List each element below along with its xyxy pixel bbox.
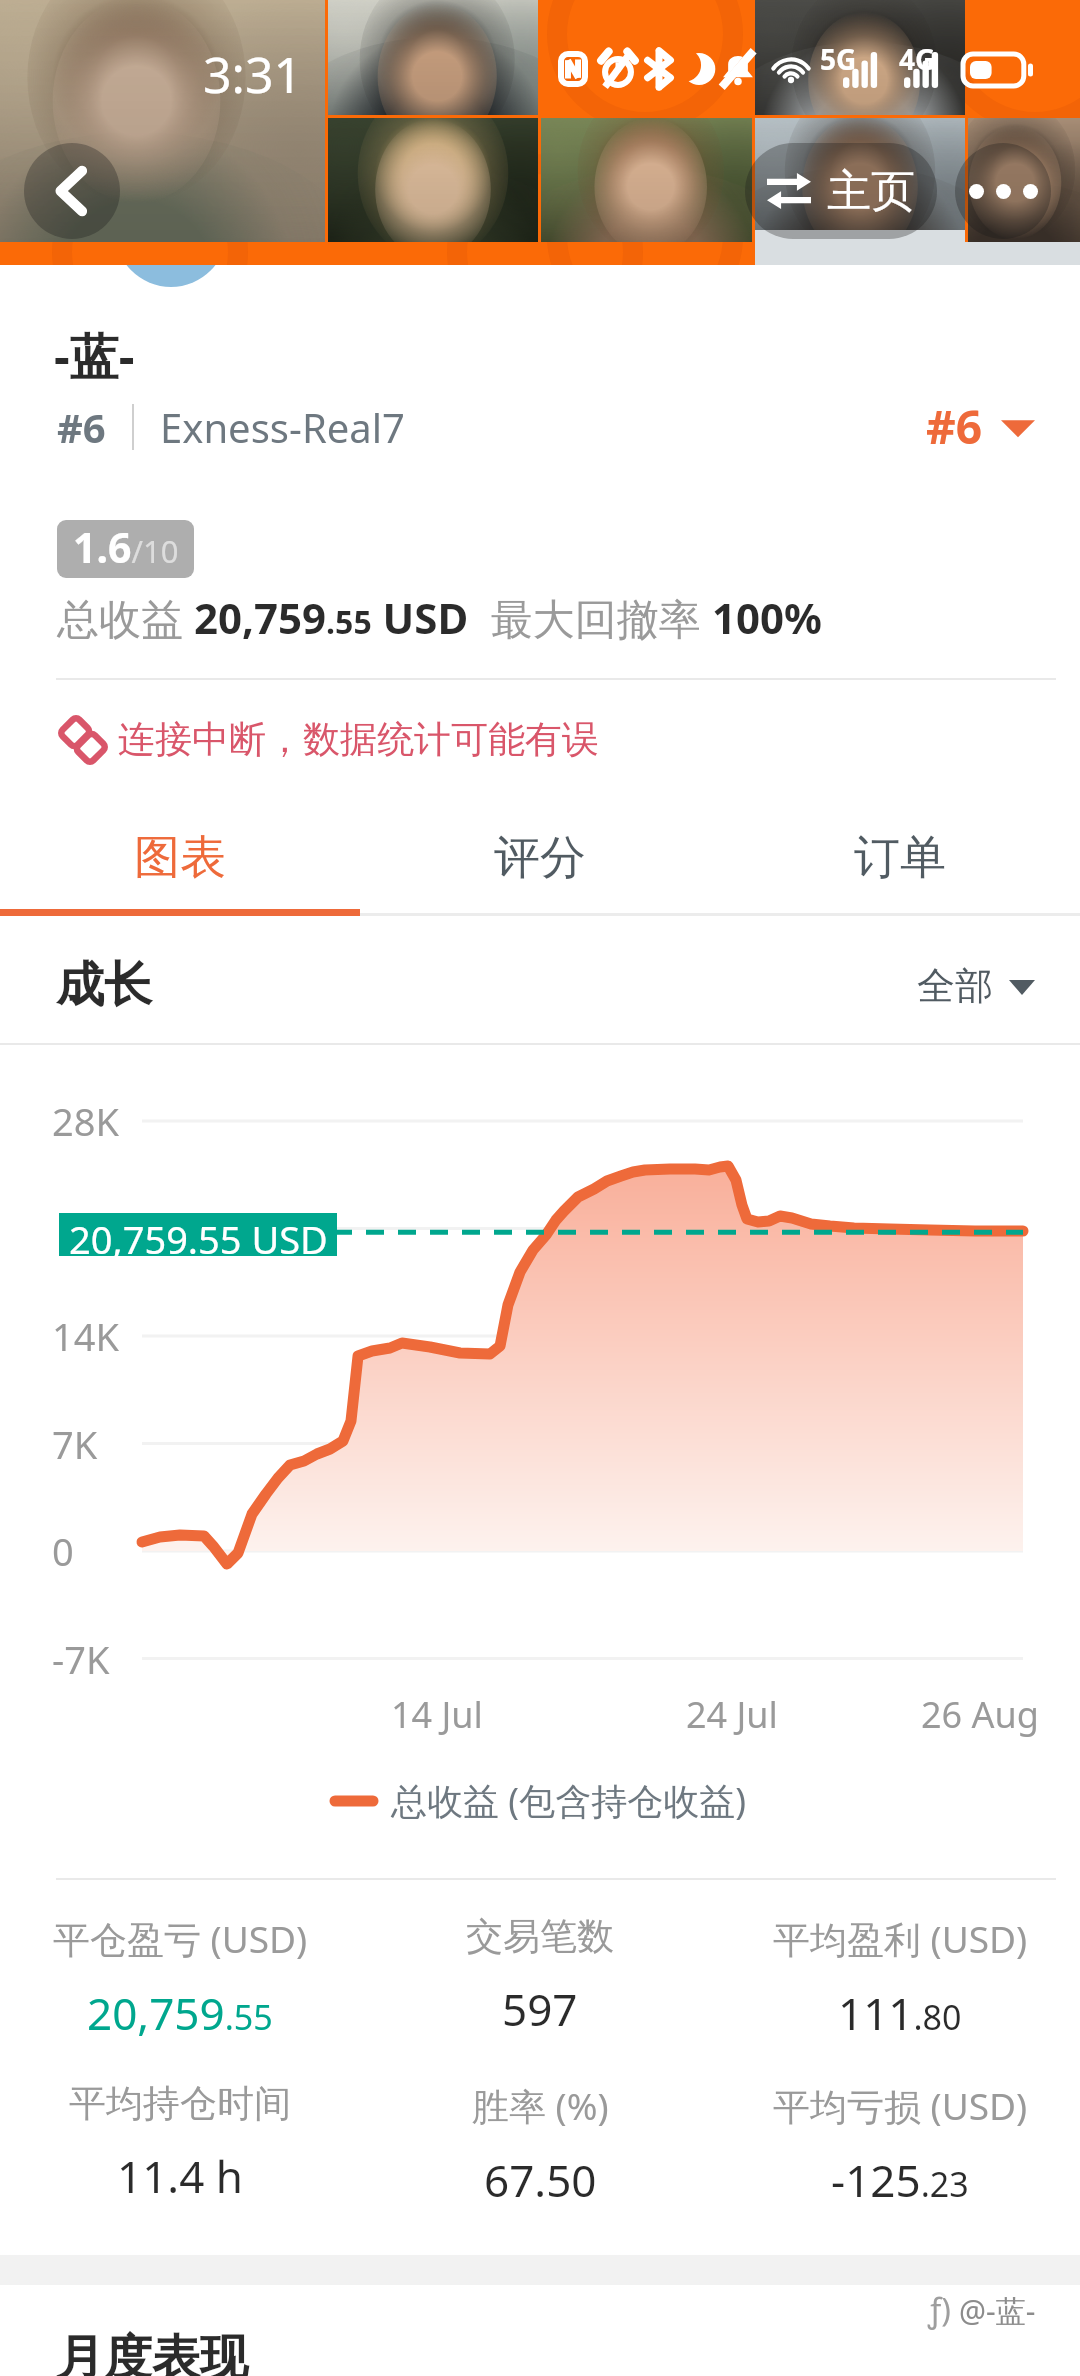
staticText: 图表	[134, 829, 226, 887]
staticText: -7K	[52, 1633, 110, 1685]
staticText: 28K	[52, 1095, 119, 1147]
staticText: 1.6/10	[73, 520, 179, 575]
staticText: #6	[57, 400, 106, 454]
staticText: -蓝-	[54, 322, 135, 389]
staticText: 597	[502, 1979, 578, 2039]
staticText: ƒ)	[928, 2288, 951, 2332]
staticText: 评分	[494, 829, 586, 887]
staticText: Exness-Real7	[160, 400, 405, 454]
staticText: 总收益	[57, 589, 194, 646]
button[interactable]: 评分	[360, 806, 720, 909]
staticText: 111.80	[838, 1983, 962, 2043]
staticText: 平均持仓时间	[69, 2080, 291, 2127]
button[interactable]: #6	[926, 395, 1035, 458]
button[interactable]: 图表	[0, 806, 360, 909]
button[interactable]: More options	[955, 143, 1051, 239]
staticText: 平均盈利 (USD)	[773, 1913, 1028, 1964]
button[interactable]: 订单	[720, 806, 1080, 909]
staticText: 胜率 (%)	[472, 2080, 609, 2131]
staticText: 14K	[52, 1310, 119, 1362]
staticText: 4G	[899, 40, 936, 78]
staticText: 11.4 h	[117, 2146, 243, 2206]
staticText: 5G	[820, 40, 857, 78]
staticText: 20,759.55	[87, 1983, 273, 2043]
staticText: 连接中断，数据统计可能有误	[118, 716, 599, 763]
button[interactable]: 主页	[745, 143, 937, 239]
staticText: #6	[926, 395, 983, 458]
staticText: 7K	[52, 1418, 98, 1470]
staticText: 主页	[827, 164, 915, 219]
staticText: 20,759.55 USD	[194, 589, 469, 646]
staticText: 交易笔数	[466, 1913, 614, 1960]
staticText: 平仓盈亏 (USD)	[53, 1913, 308, 1964]
staticText: 14 Jul	[391, 1690, 483, 1739]
staticText: -125.23	[831, 2150, 969, 2210]
staticText: 24 Jul	[686, 1690, 778, 1739]
staticText: 总收益 (包含持仓收益)	[391, 1776, 746, 1825]
staticText: 20,759.55 USD	[69, 1213, 328, 1256]
staticText: 100%	[712, 589, 822, 646]
button[interactable]: 全部	[917, 962, 1035, 1010]
staticText: 0	[52, 1525, 74, 1577]
staticText: 最大回撤率	[469, 589, 712, 646]
staticText: 全部	[917, 962, 993, 1010]
staticText: 平均亏损 (USD)	[773, 2080, 1028, 2131]
staticText: 67.50	[484, 2150, 597, 2210]
button[interactable]: Back	[24, 143, 120, 239]
staticText: 26 Aug	[921, 1690, 1039, 1739]
staticText: 月度表现	[56, 2328, 248, 2376]
staticText: @-蓝-	[959, 2290, 1036, 2331]
staticText: 订单	[854, 829, 946, 887]
staticText: 成长	[56, 955, 152, 1015]
staticText: 3:31	[203, 40, 303, 108]
